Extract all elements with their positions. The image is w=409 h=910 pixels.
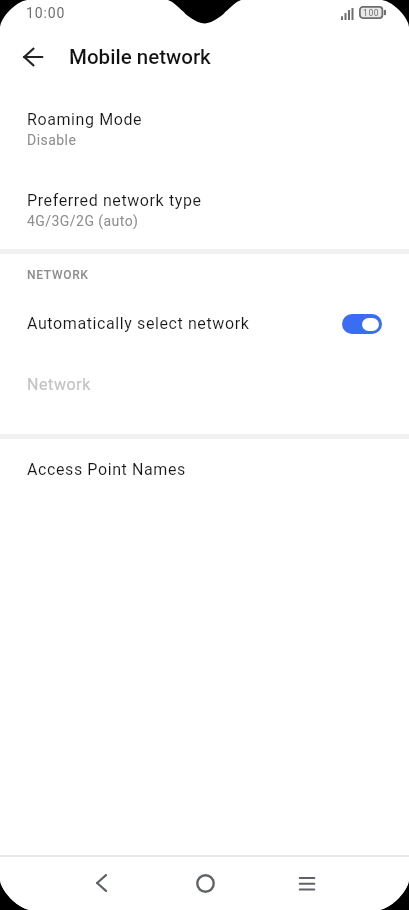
staticText: Access Point Names	[27, 460, 186, 479]
staticText: Automatically select network	[27, 314, 342, 333]
button[interactable]: Access Point Names	[0, 451, 409, 487]
button[interactable]: Recent apps	[283, 859, 331, 907]
staticText: Roaming Mode	[27, 110, 143, 129]
staticText: 4G/3G/2G (auto)	[27, 213, 139, 229]
button[interactable]: Automatically select network	[0, 303, 409, 344]
button[interactable]: Back	[7, 29, 63, 85]
staticText: 10:00	[26, 5, 66, 21]
staticText: 100	[363, 8, 380, 18]
staticText: Disable	[27, 132, 77, 148]
button[interactable]: Back	[77, 859, 125, 907]
staticText: Preferred network type	[27, 191, 202, 210]
button[interactable]: Network	[0, 366, 409, 402]
staticText: Network	[27, 375, 92, 394]
staticText: NETWORK	[27, 268, 89, 282]
staticText: Mobile network	[69, 45, 211, 69]
button[interactable]: Home	[181, 859, 229, 907]
